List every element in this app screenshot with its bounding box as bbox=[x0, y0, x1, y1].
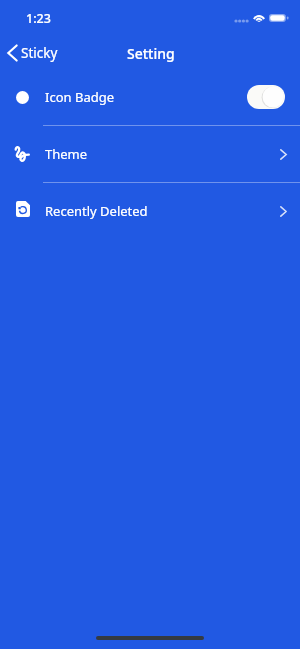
other: Open bbox=[280, 149, 287, 160]
staticText: 1:23 bbox=[26, 10, 51, 27]
staticText: Icon Badge bbox=[45, 88, 114, 106]
staticText: Sticky bbox=[21, 44, 58, 62]
button[interactable]: Theme bbox=[0, 126, 300, 182]
staticText: Recently Deleted bbox=[45, 202, 148, 220]
other: Open bbox=[280, 206, 287, 217]
button[interactable]: Recently Deleted bbox=[0, 183, 300, 239]
button[interactable]: Icon Badge bbox=[0, 69, 300, 125]
button[interactable]: Icon Badge toggle bbox=[247, 85, 285, 109]
staticText: Setting bbox=[127, 44, 175, 63]
staticText: Theme bbox=[45, 145, 88, 163]
button[interactable]: Sticky bbox=[2, 41, 66, 65]
